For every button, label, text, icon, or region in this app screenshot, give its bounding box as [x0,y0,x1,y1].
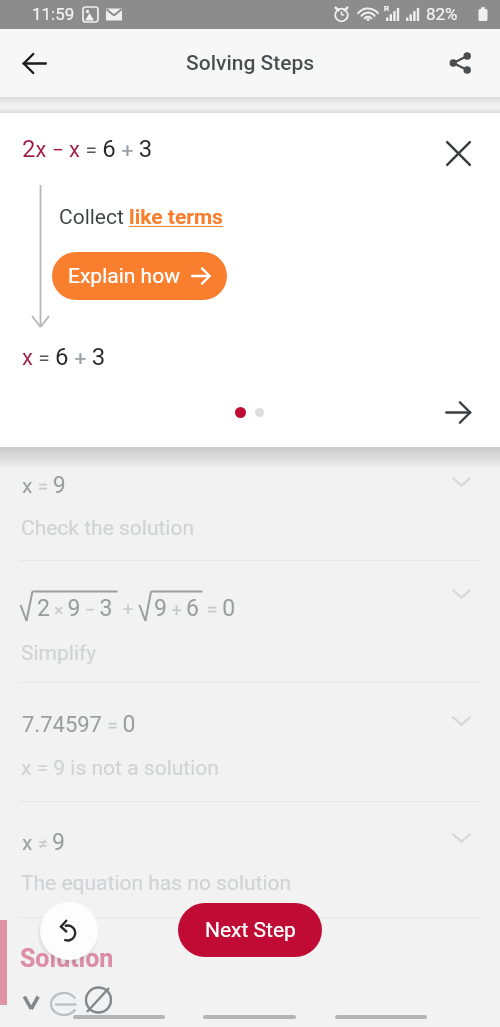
button[interactable]: Back [13,42,55,84]
staticText: Next Step [205,918,296,943]
staticText: 11:59 [32,4,75,24]
staticText: Check the solution [21,516,195,541]
button[interactable]: Share [439,42,481,84]
staticText: The equation has no solution [21,871,292,896]
button[interactable]: Undo [40,902,98,960]
button[interactable] [0,802,500,917]
staticText: + [123,598,134,619]
staticText: x = 9 is not a solution [21,756,219,781]
button[interactable] [0,683,500,801]
staticText: x ≠ 9 [22,829,65,856]
staticText: Collect like terms [59,205,223,230]
button[interactable] [0,452,500,560]
staticText: 7.74597 = 0 [22,711,136,738]
staticText: x = 6 + 3 [22,343,106,371]
button[interactable]: Close [437,132,479,174]
staticText: R [384,4,390,13]
staticText: 82% [426,4,458,24]
staticText: 9 + 6 [154,595,199,622]
button[interactable]: Next step [437,391,479,433]
staticText: Solution [20,944,114,973]
staticText: 2x − x = 6 + 3 [22,135,153,163]
staticText: 2 × 9 − 3 [37,595,113,622]
button[interactable]: Next Step [178,903,322,957]
staticText: x = 9 [22,472,66,499]
button[interactable]: Explain how [52,252,227,300]
button[interactable] [0,561,500,682]
staticText: = 0 [207,595,236,622]
staticText: Simplify [21,641,97,666]
staticText: Explain how [68,264,180,289]
staticText: Solving Steps [186,51,315,76]
